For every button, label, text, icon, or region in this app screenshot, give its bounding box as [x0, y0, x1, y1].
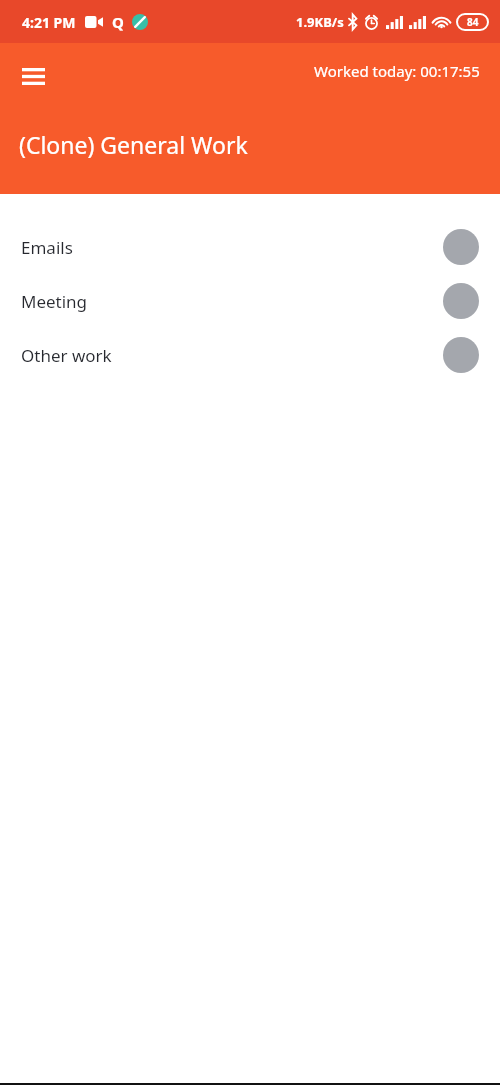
button[interactable]: Meeting	[0, 274, 500, 328]
button[interactable]: Other work	[0, 328, 500, 382]
staticText: Worked today: 00:17:55	[314, 61, 480, 81]
button[interactable]: Emails	[0, 220, 500, 274]
button[interactable]: Start timer for Other work	[443, 337, 479, 373]
staticText: Emails	[21, 236, 73, 259]
staticText: Meeting	[21, 290, 88, 313]
button[interactable]: Start timer for Emails	[443, 229, 479, 265]
staticText: Q	[112, 12, 124, 32]
staticText: Other work	[21, 344, 112, 367]
staticText: (Clone) General Work	[19, 129, 248, 160]
staticText: 1.9KB/s	[296, 13, 344, 31]
staticText: 4:21 PM	[22, 13, 76, 32]
button[interactable]: Start timer for Meeting	[443, 283, 479, 319]
button[interactable]: Open navigation menu	[9, 52, 57, 100]
staticText: 84	[467, 15, 479, 29]
